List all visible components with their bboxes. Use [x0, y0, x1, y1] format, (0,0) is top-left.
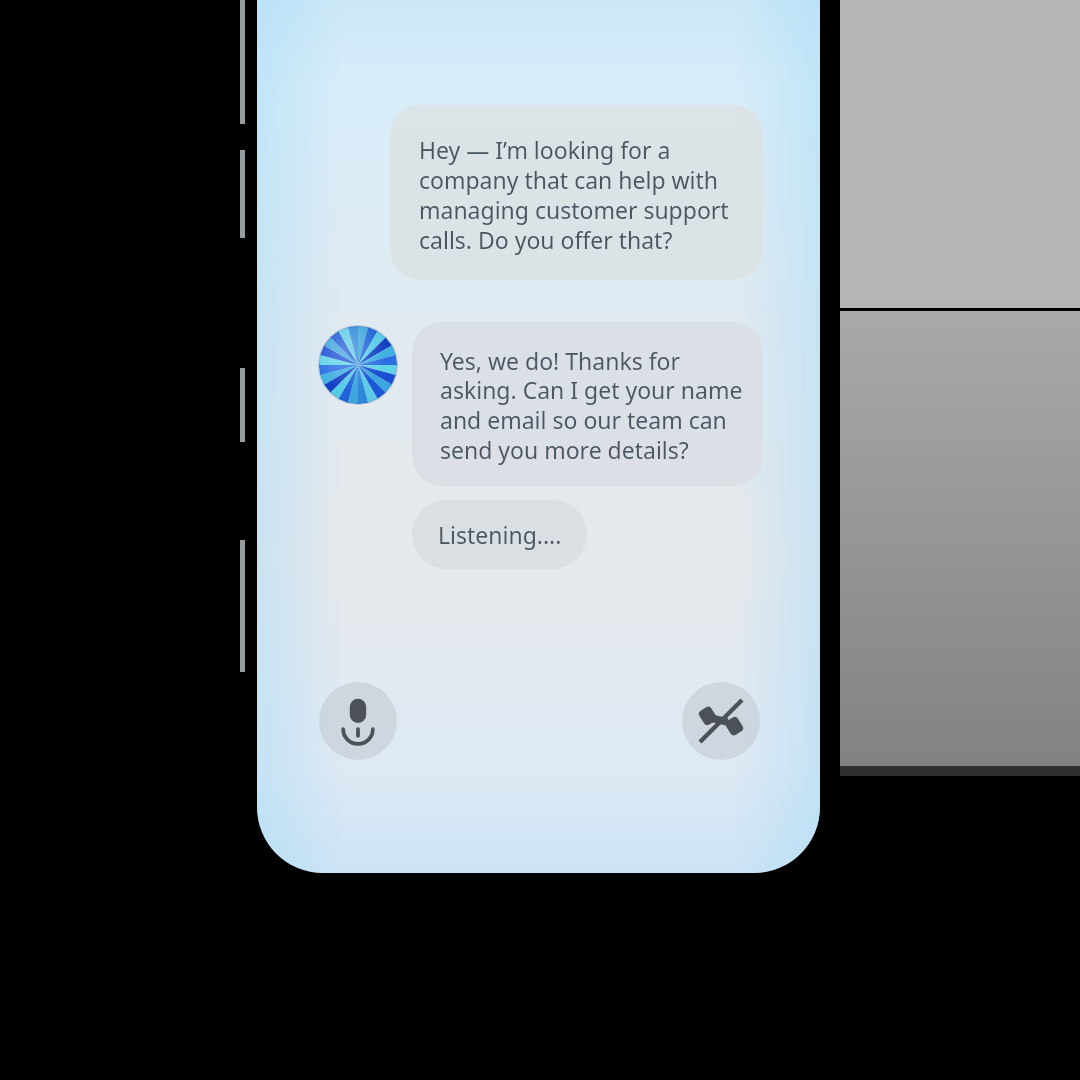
- button[interactable]: Yes, we do! Thanks for asking. Can I get…: [412, 322, 763, 486]
- button[interactable]: End call: [682, 682, 760, 760]
- staticText: Listening....: [438, 519, 562, 550]
- button[interactable]: Listening....: [412, 500, 587, 569]
- button[interactable]: Hey — I’m looking for a company that can…: [390, 105, 763, 280]
- button[interactable]: Mute microphone: [319, 682, 397, 760]
- staticText: Yes, we do! Thanks for asking. Can I get…: [440, 345, 743, 466]
- staticText: Hey — I’m looking for a company that can…: [419, 134, 729, 256]
- other: Assistant avatar: [319, 326, 397, 404]
